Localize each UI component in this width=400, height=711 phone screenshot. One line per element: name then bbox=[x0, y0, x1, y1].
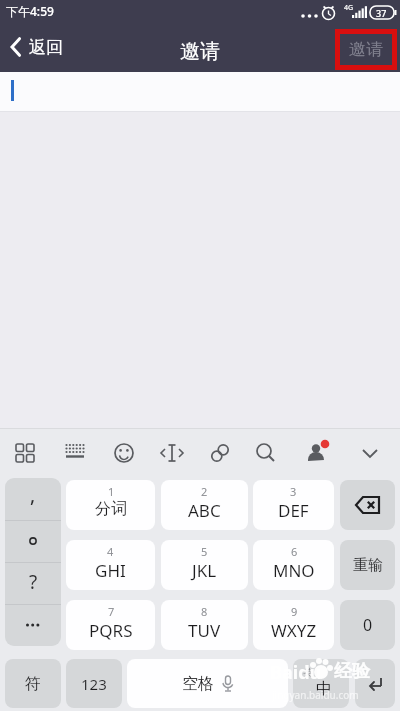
button[interactable]: 重输 bbox=[340, 540, 395, 590]
staticText: WXYZ bbox=[271, 619, 317, 642]
staticText: 7 bbox=[108, 604, 115, 619]
staticText: 4 bbox=[107, 544, 114, 559]
button[interactable] bbox=[355, 659, 395, 708]
button[interactable]: 1 bbox=[66, 480, 155, 530]
staticText: 重输 bbox=[353, 556, 383, 575]
staticText: 0 bbox=[363, 614, 373, 636]
staticText: 4G bbox=[344, 3, 354, 13]
staticText: 下午4:59 bbox=[6, 3, 54, 19]
button[interactable] bbox=[5, 604, 61, 646]
button[interactable]: 4 bbox=[66, 540, 155, 590]
staticText: 8 bbox=[201, 604, 208, 619]
staticText: ABC bbox=[188, 499, 221, 522]
staticText: TUV bbox=[188, 619, 221, 642]
button[interactable]: 7 bbox=[66, 600, 155, 650]
button[interactable]: , bbox=[5, 478, 61, 520]
staticText: 分词 bbox=[95, 499, 127, 519]
staticText: 空格 bbox=[182, 674, 214, 694]
button[interactable]: 英 bbox=[293, 659, 349, 708]
staticText: 2 bbox=[201, 484, 208, 499]
button[interactable]: 2 bbox=[161, 480, 248, 530]
button[interactable]: 8 bbox=[161, 600, 248, 650]
staticText: 123 bbox=[81, 674, 107, 694]
staticText: ? bbox=[29, 569, 38, 595]
staticText: MNO bbox=[273, 559, 315, 582]
button[interactable]: 返回 bbox=[8, 36, 63, 58]
staticText: 5 bbox=[201, 544, 208, 559]
button[interactable]: 123 bbox=[66, 659, 122, 708]
staticText: 经验 bbox=[334, 660, 370, 683]
staticText: 邀请 bbox=[180, 39, 220, 64]
staticText: 9 bbox=[291, 604, 298, 619]
button[interactable]: 邀请 bbox=[335, 29, 397, 70]
button[interactable]: 6 bbox=[253, 540, 334, 590]
staticText: 6 bbox=[291, 544, 298, 559]
button[interactable]: 空格 bbox=[127, 659, 288, 708]
button[interactable]: 符 bbox=[5, 659, 61, 708]
button[interactable]: 9 bbox=[253, 600, 334, 650]
button[interactable]: 5 bbox=[161, 540, 248, 590]
staticText: PQRS bbox=[89, 619, 133, 642]
staticText: JKL bbox=[192, 559, 217, 582]
staticText: 返回 bbox=[29, 37, 63, 58]
button[interactable] bbox=[0, 72, 400, 112]
button[interactable]: ? bbox=[5, 562, 61, 604]
staticText: DEF bbox=[278, 499, 309, 522]
button[interactable] bbox=[340, 480, 395, 530]
button[interactable]: 0 bbox=[340, 600, 395, 650]
button[interactable]: 3 bbox=[253, 480, 334, 530]
staticText: , bbox=[30, 482, 36, 508]
staticText: 邀请 bbox=[349, 39, 383, 60]
staticText: 中 bbox=[316, 679, 332, 699]
staticText: 3 bbox=[290, 484, 297, 499]
staticText: GHI bbox=[95, 559, 126, 582]
staticText: 37 bbox=[376, 7, 387, 19]
staticText: 符 bbox=[25, 674, 41, 694]
staticText: Baidu bbox=[270, 660, 322, 685]
button[interactable] bbox=[5, 520, 61, 562]
staticText: 英 bbox=[303, 666, 313, 679]
staticText: jingyan.baidu.com bbox=[272, 688, 359, 702]
staticText: 1 bbox=[108, 484, 115, 499]
